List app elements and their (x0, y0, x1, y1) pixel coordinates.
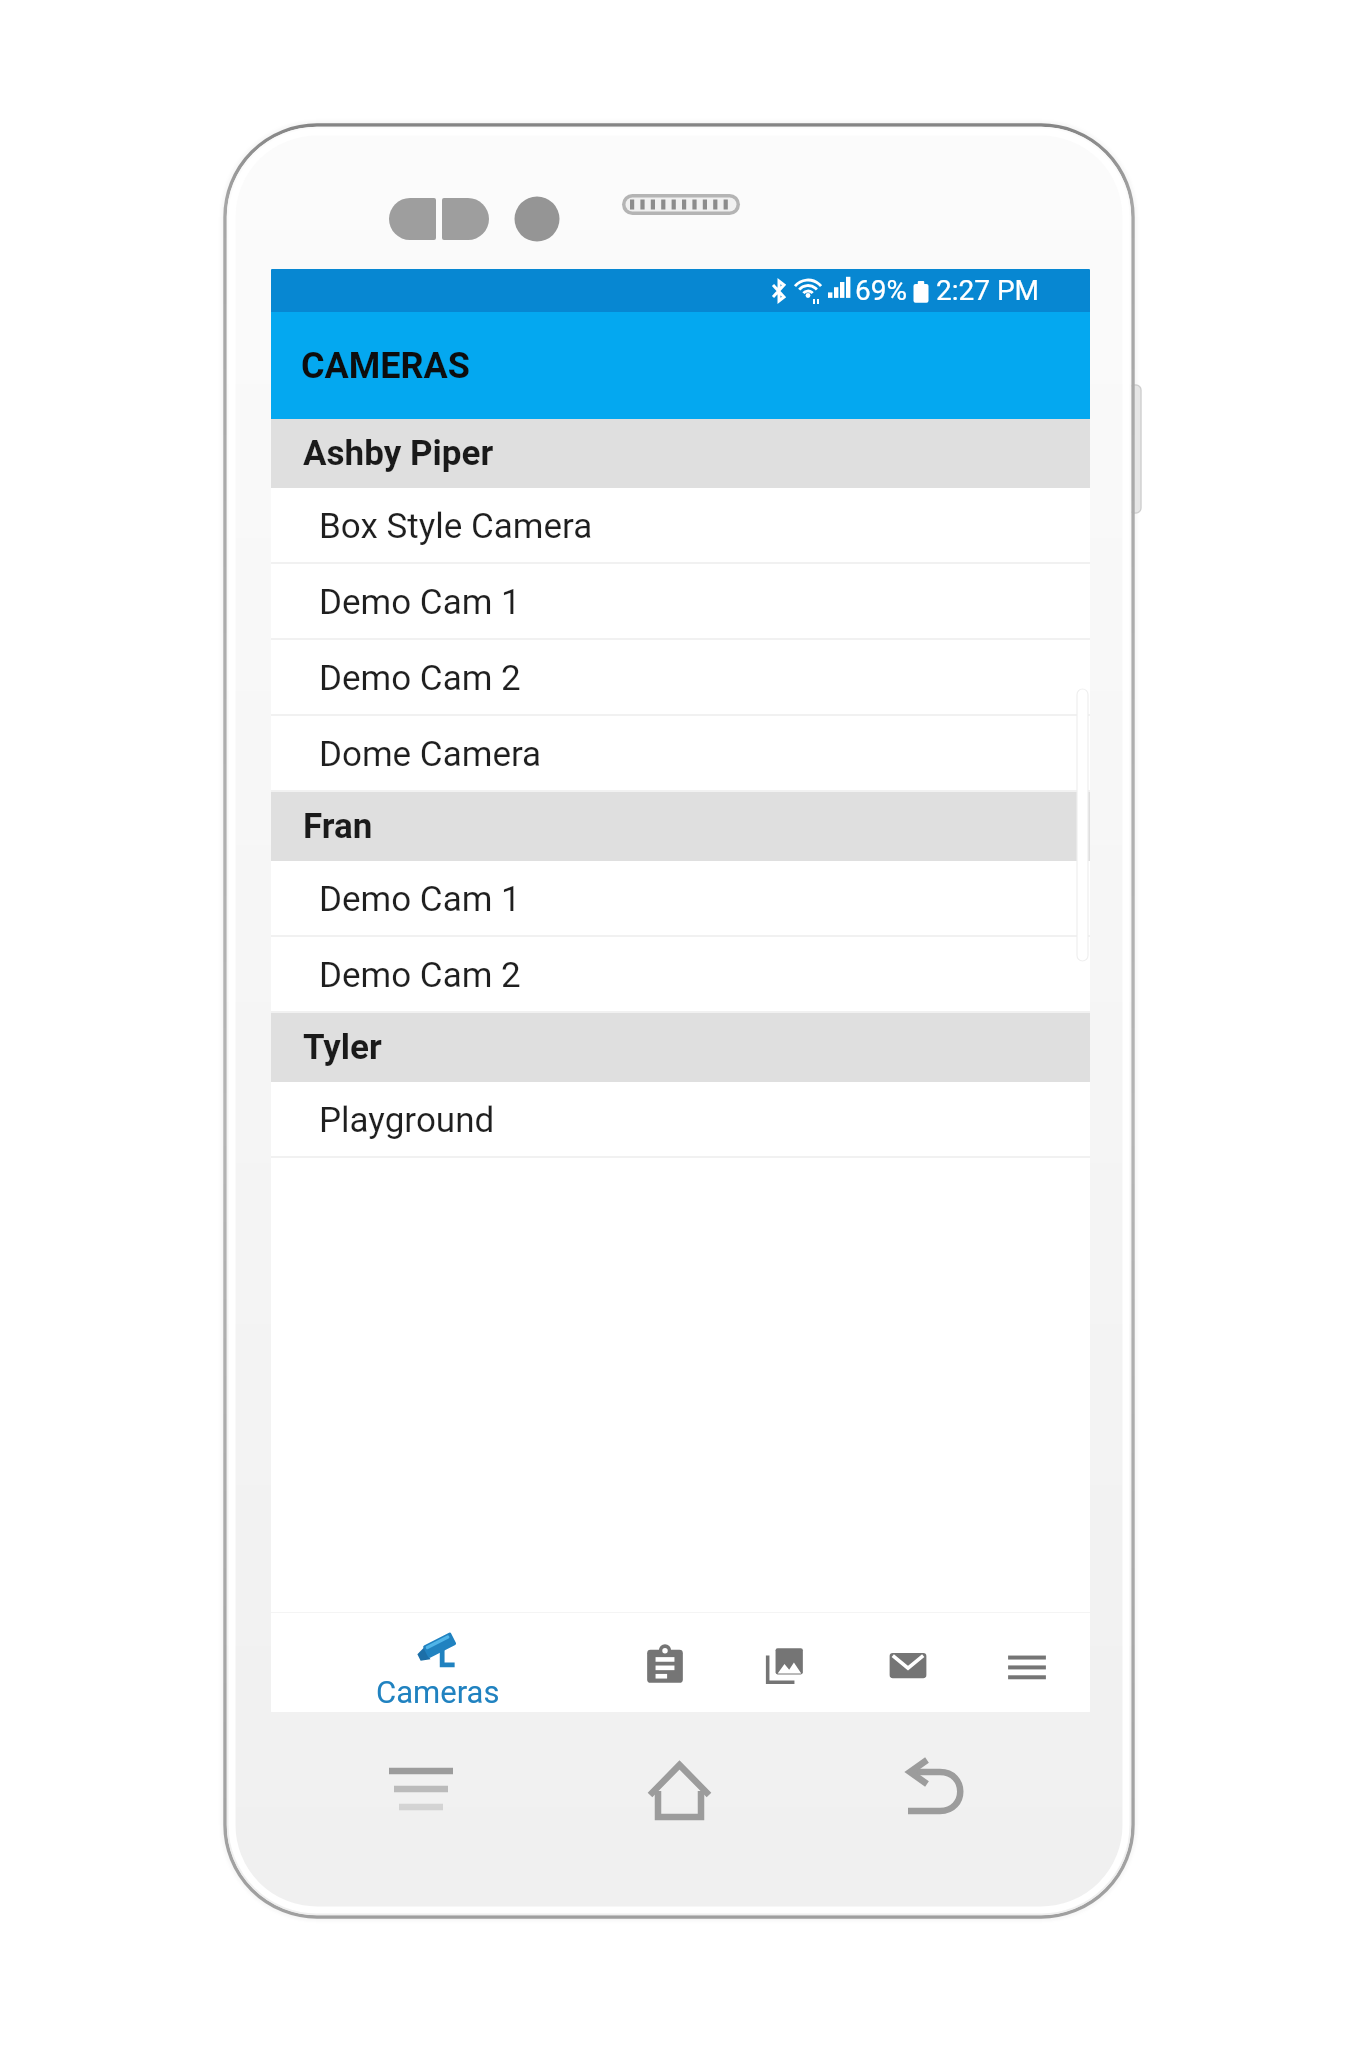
button[interactable]: Recent apps (379, 1750, 463, 1830)
staticText: Playground (319, 1100, 495, 1141)
button[interactable]: Demo Cam 2 (271, 640, 1090, 716)
button[interactable]: Demo Cam 1 (271, 861, 1090, 937)
staticText: Demo Cam 1 (319, 879, 521, 920)
button[interactable]: Reports (625, 1625, 705, 1705)
button[interactable]: Dome Camera (271, 716, 1090, 792)
button[interactable]: Box Style Camera (271, 488, 1090, 564)
staticText: Box Style Camera (319, 506, 593, 547)
staticText: Demo Cam 2 (319, 955, 521, 996)
button[interactable]: Mail (868, 1625, 948, 1705)
button[interactable]: Home (640, 1750, 720, 1830)
staticText: Demo Cam 2 (319, 658, 521, 699)
button[interactable]: Demo Cam 1 (271, 564, 1090, 640)
staticText: Demo Cam 1 (319, 582, 521, 623)
button[interactable]: Photos (745, 1625, 825, 1705)
staticText: Tyler (303, 1027, 382, 1068)
button[interactable]: Cameras (370, 1620, 506, 1712)
staticText: 2:27 PM (936, 274, 1040, 307)
button[interactable]: Demo Cam 2 (271, 937, 1090, 1013)
button[interactable]: More (987, 1625, 1067, 1705)
staticText: Ashby Piper (303, 433, 494, 474)
staticText: Dome Camera (319, 734, 542, 775)
staticText: Cameras (376, 1674, 500, 1710)
staticText: Fran (303, 806, 373, 847)
staticText: CAMERAS (301, 345, 470, 387)
staticText: 69% (855, 274, 907, 307)
button[interactable]: Back (895, 1750, 979, 1830)
button[interactable]: Playground (271, 1082, 1090, 1158)
